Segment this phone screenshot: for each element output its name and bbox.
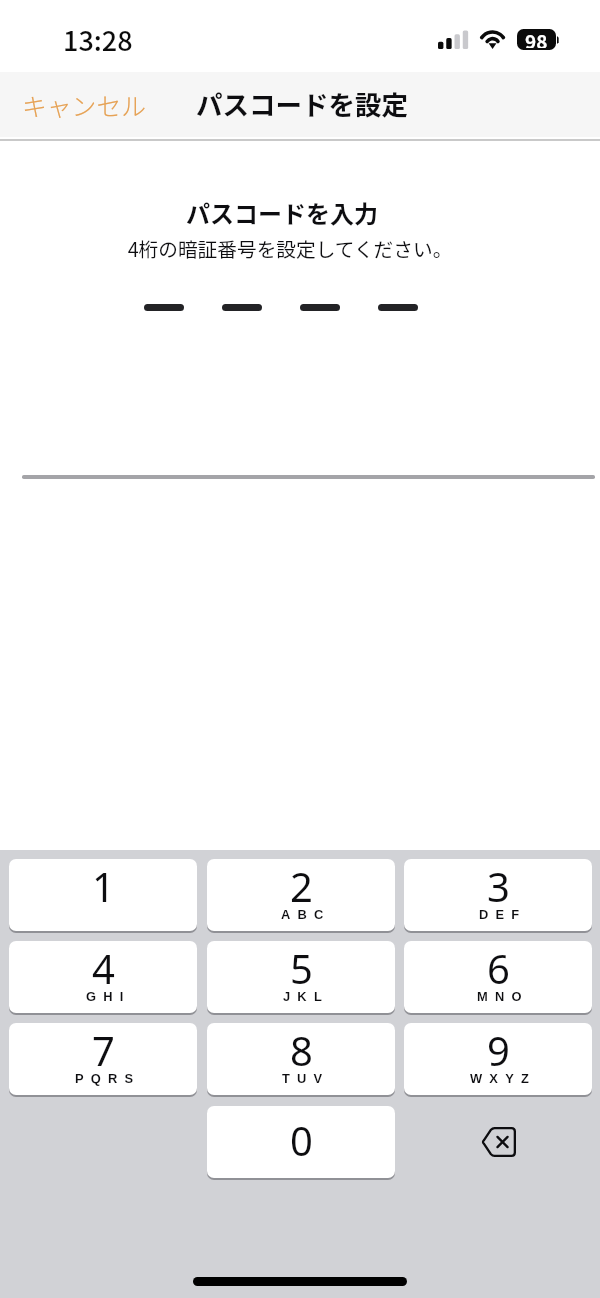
staticText: 9: [487, 1023, 510, 1077]
staticText: パスコードを入力: [0, 195, 564, 230]
staticText: ABC: [281, 907, 331, 921]
staticText: キャンセル: [22, 87, 146, 123]
staticText: 4桁の暗証番号を設定してください。: [8, 234, 572, 263]
staticText: MNO: [477, 989, 529, 1003]
button[interactable]: Delete: [404, 1106, 592, 1178]
button[interactable]: キャンセル: [0, 77, 168, 133]
staticText: 4: [92, 941, 115, 995]
staticText: 7: [92, 1023, 115, 1077]
staticText: パスコードを設定: [196, 84, 408, 122]
staticText: 3: [487, 859, 510, 913]
staticText: 8: [290, 1023, 313, 1077]
staticText: WXYZ: [470, 1071, 537, 1085]
button[interactable]: 5: [207, 941, 395, 1013]
button[interactable]: 0: [207, 1106, 395, 1178]
button[interactable]: 6: [404, 941, 592, 1013]
staticText: GHI: [86, 989, 131, 1003]
button[interactable]: 4: [9, 941, 197, 1013]
staticText: 98: [525, 29, 548, 48]
staticText: DEF: [479, 907, 527, 921]
staticText: TUV: [282, 1071, 330, 1085]
button[interactable]: 1: [9, 859, 197, 931]
button[interactable]: 7: [9, 1023, 197, 1095]
staticText: 1: [92, 859, 115, 913]
staticText: 6: [487, 941, 510, 995]
staticText: 2: [290, 859, 313, 913]
button[interactable]: 9: [404, 1023, 592, 1095]
staticText: JKL: [283, 989, 329, 1003]
button[interactable]: 8: [207, 1023, 395, 1095]
staticText: 0: [290, 1113, 313, 1167]
staticText: 13:28: [63, 20, 133, 59]
staticText: 5: [290, 941, 313, 995]
staticText: PQRS: [75, 1071, 141, 1085]
button[interactable]: 3: [404, 859, 592, 931]
button[interactable]: 2: [207, 859, 395, 931]
